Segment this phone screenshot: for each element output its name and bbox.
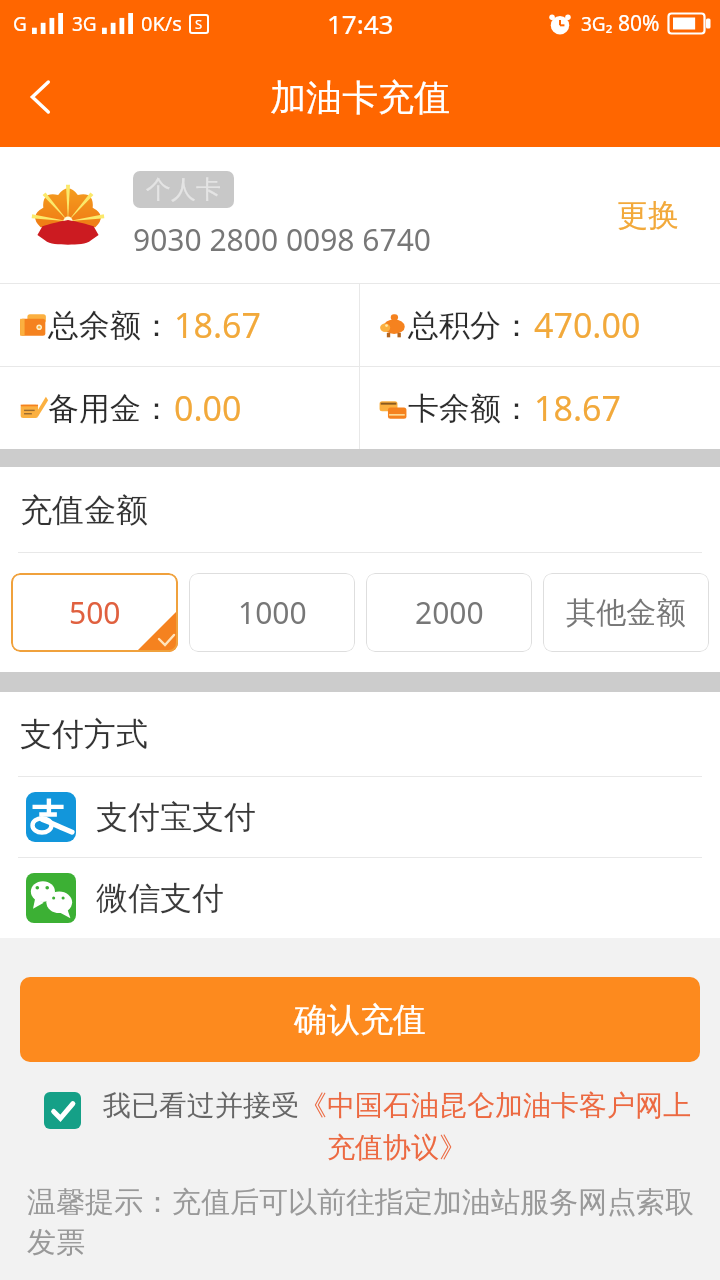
staticText: 支付宝支付 (96, 797, 256, 837)
staticText: 备用金： (48, 389, 172, 428)
button[interactable]: 支付宝支付 (0, 777, 720, 857)
staticText: 总余额： (48, 306, 172, 345)
button[interactable]: Back (0, 47, 80, 147)
button[interactable]: 微信支付 (0, 858, 720, 938)
staticText: 0K/s (141, 10, 182, 37)
button[interactable]: 500 (11, 573, 178, 652)
button[interactable]: 确认充值 (20, 977, 700, 1062)
staticText: G (13, 11, 27, 37)
staticText: 其他金额 (566, 594, 686, 632)
staticText: 470.00 (534, 302, 641, 348)
button[interactable]: Agree checkbox (44, 1092, 81, 1129)
staticText: S (195, 15, 203, 33)
staticText: 80% (618, 9, 660, 38)
staticText: 更换 (617, 196, 679, 235)
staticText: 18.67 (174, 302, 261, 348)
staticText: 17:43 (327, 6, 394, 41)
staticText: 微信支付 (96, 878, 224, 918)
staticText: 卡余额： (408, 389, 532, 428)
button[interactable]: 其他金额 (543, 573, 709, 652)
staticText: 2000 (415, 592, 484, 633)
staticText: 0.00 (174, 385, 242, 431)
staticText: 3G (72, 11, 97, 37)
staticText: 18.67 (534, 385, 621, 431)
staticText: 确认充值 (294, 999, 426, 1041)
staticText: 3G₂ (581, 11, 613, 37)
staticText: 1000 (238, 592, 307, 633)
staticText: 我已看过并接受《中国石油昆仑加油卡客户网上充值协议》 (94, 1088, 700, 1166)
staticText: 温馨提示：充值后可以前往指定加油站服务网点索取发票 (27, 1184, 704, 1260)
staticText: 500 (69, 592, 121, 633)
button[interactable]: 2000 (366, 573, 532, 652)
staticText: 总积分： (408, 306, 532, 345)
button[interactable]: 1000 (189, 573, 355, 652)
staticText: 个人卡 (146, 174, 221, 205)
button[interactable]: 更换 (601, 186, 695, 245)
staticText: 支付方式 (20, 714, 148, 754)
staticText: 9030 2800 0098 6740 (133, 219, 431, 260)
staticText: 充值金额 (20, 490, 148, 530)
staticText: 加油卡充值 (270, 75, 450, 120)
